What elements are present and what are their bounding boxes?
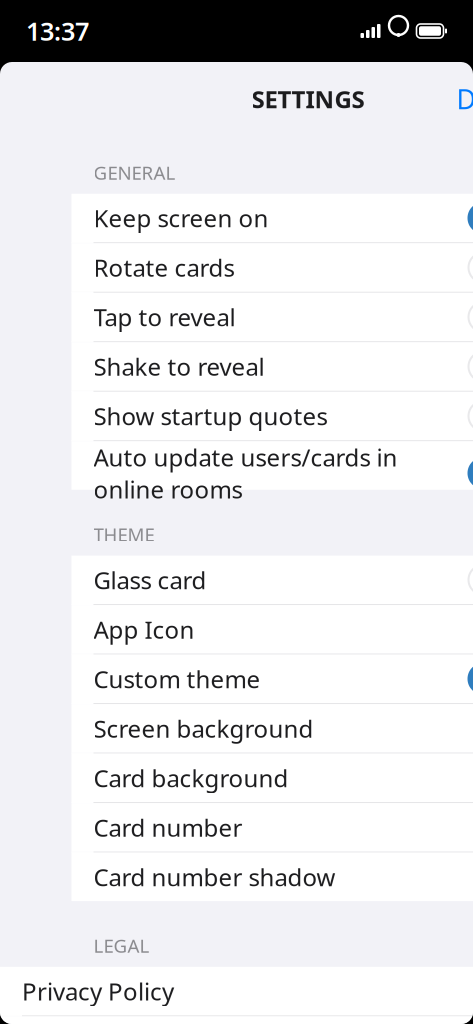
button[interactable]: Custom theme [71,655,473,703]
button[interactable]: Card number [71,803,473,852]
button[interactable]: Card background [71,754,473,802]
staticText: Show startup quotes [93,400,327,432]
button[interactable]: Screen background [71,704,473,753]
staticText: App Icon [93,613,194,645]
button[interactable]: Auto update users/cards in online rooms [71,441,473,490]
staticText: Keep screen on [93,202,268,234]
staticText: Tap to reveal [93,301,235,333]
staticText: Screen background [93,712,313,744]
staticText: LEGAL [93,933,149,958]
staticText: Glass card [93,564,206,596]
staticText: SETTINGS [251,83,364,115]
staticText: Auto update users/cards in online rooms [93,441,397,505]
staticText: Done [456,81,473,117]
staticText: Card background [93,762,288,794]
button[interactable]: Terms & Conditions [0,1016,473,1024]
button[interactable]: Show startup quotes [71,392,473,440]
button[interactable]: App Icon [71,605,473,654]
button[interactable]: Keep screen on [71,194,473,242]
staticText: GENERAL [93,160,175,185]
staticText: THEME [93,522,154,547]
staticText: Card number shadow [93,861,335,893]
button[interactable]: Glass card [71,556,473,604]
button[interactable]: Rotate cards [71,243,473,292]
button[interactable]: Shake to reveal [71,342,473,391]
button[interactable]: Done [446,75,473,123]
staticText: Rotate cards [93,252,234,283]
staticText: Custom theme [93,663,260,695]
button[interactable]: Card number shadow [71,853,473,901]
staticText: Shake to reveal [93,351,264,382]
staticText: Card number [93,811,242,843]
staticText: 13:37 [26,14,89,48]
staticText: Privacy Policy [22,975,174,1007]
button[interactable]: Privacy Policy [0,967,473,1015]
button[interactable]: Tap to reveal [71,293,473,341]
